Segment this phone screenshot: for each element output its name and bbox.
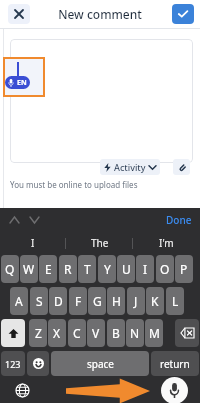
staticText: R bbox=[64, 261, 72, 277]
staticText: T bbox=[84, 261, 91, 277]
button[interactable]: Y bbox=[98, 255, 116, 283]
staticText: O bbox=[160, 261, 170, 277]
staticText: I'm bbox=[159, 236, 174, 250]
button[interactable]: E bbox=[39, 255, 57, 283]
button[interactable]: O bbox=[156, 255, 174, 283]
staticText: N bbox=[130, 325, 140, 341]
button[interactable]: J bbox=[127, 287, 145, 315]
staticText: E bbox=[45, 261, 52, 277]
button[interactable]: I bbox=[0, 232, 66, 254]
button[interactable]: S bbox=[30, 287, 48, 315]
staticText: P bbox=[180, 261, 188, 277]
staticText: D bbox=[54, 293, 63, 309]
button[interactable]: 123 bbox=[1, 351, 25, 376]
button[interactable]: X bbox=[48, 319, 66, 347]
button[interactable]: M bbox=[145, 319, 163, 347]
button[interactable]: K bbox=[146, 287, 164, 315]
button[interactable]: A bbox=[10, 287, 28, 315]
staticText: I bbox=[31, 236, 35, 250]
staticText: Activity bbox=[114, 161, 146, 173]
staticText: Q bbox=[5, 261, 15, 277]
button[interactable]: L bbox=[166, 287, 184, 315]
staticText: Y bbox=[104, 261, 111, 277]
button[interactable]: Activity bbox=[100, 159, 160, 175]
button[interactable]: Shift bbox=[1, 319, 25, 347]
staticText: EN bbox=[17, 78, 27, 88]
button[interactable]: R bbox=[59, 255, 77, 283]
button[interactable]: Q bbox=[1, 255, 19, 283]
button[interactable]: V bbox=[87, 319, 105, 347]
button[interactable]: U bbox=[117, 255, 135, 283]
button[interactable]: C bbox=[68, 319, 86, 347]
staticText: S bbox=[36, 293, 43, 309]
staticText: I bbox=[143, 261, 148, 277]
staticText: J bbox=[134, 293, 138, 309]
staticText: Done bbox=[166, 213, 192, 227]
button[interactable]: P bbox=[175, 255, 193, 283]
button[interactable]: Z bbox=[29, 319, 47, 347]
button[interactable]: Emoji bbox=[27, 351, 49, 376]
staticText: G bbox=[93, 293, 102, 309]
button[interactable]: The bbox=[66, 232, 133, 254]
staticText: space bbox=[87, 357, 114, 371]
button[interactable]: Backspace bbox=[175, 319, 199, 347]
button[interactable]: return bbox=[151, 351, 199, 376]
button[interactable]: N bbox=[126, 319, 144, 347]
staticText: M bbox=[149, 325, 160, 341]
button[interactable]: B bbox=[107, 319, 125, 347]
button[interactable]: Voice input bbox=[161, 377, 188, 403]
staticText: U bbox=[122, 261, 131, 277]
button[interactable]: Save comment bbox=[172, 4, 194, 24]
staticText: The bbox=[91, 236, 109, 250]
staticText: K bbox=[151, 293, 159, 309]
button[interactable]: T bbox=[78, 255, 96, 283]
staticText: F bbox=[75, 293, 82, 309]
button[interactable]: space bbox=[51, 351, 149, 376]
button[interactable]: F bbox=[69, 287, 87, 315]
button[interactable]: I bbox=[136, 255, 154, 283]
button[interactable]: Done bbox=[164, 211, 194, 229]
button[interactable]: W bbox=[20, 255, 38, 283]
staticText: X bbox=[53, 325, 61, 341]
staticText: W bbox=[23, 261, 35, 277]
staticText: return bbox=[160, 357, 190, 371]
staticText: V bbox=[92, 325, 100, 341]
staticText: C bbox=[73, 325, 81, 341]
button[interactable]: Change keyboard language bbox=[12, 380, 32, 400]
button[interactable]: D bbox=[49, 287, 67, 315]
staticText: Z bbox=[35, 325, 42, 341]
button[interactable]: Attach file bbox=[173, 159, 190, 175]
button[interactable]: Close bbox=[8, 4, 30, 24]
staticText: H bbox=[112, 293, 121, 309]
button[interactable]: I'm bbox=[133, 232, 200, 254]
staticText: You must be online to upload files bbox=[10, 179, 138, 190]
button[interactable]: EN bbox=[5, 76, 30, 89]
button[interactable]: H bbox=[107, 287, 125, 315]
staticText: L bbox=[172, 293, 179, 309]
button[interactable]: G bbox=[88, 287, 106, 315]
staticText: New comment bbox=[58, 6, 142, 22]
staticText: A bbox=[15, 293, 23, 309]
staticText: B bbox=[112, 325, 120, 341]
staticText: 123 bbox=[5, 358, 21, 370]
